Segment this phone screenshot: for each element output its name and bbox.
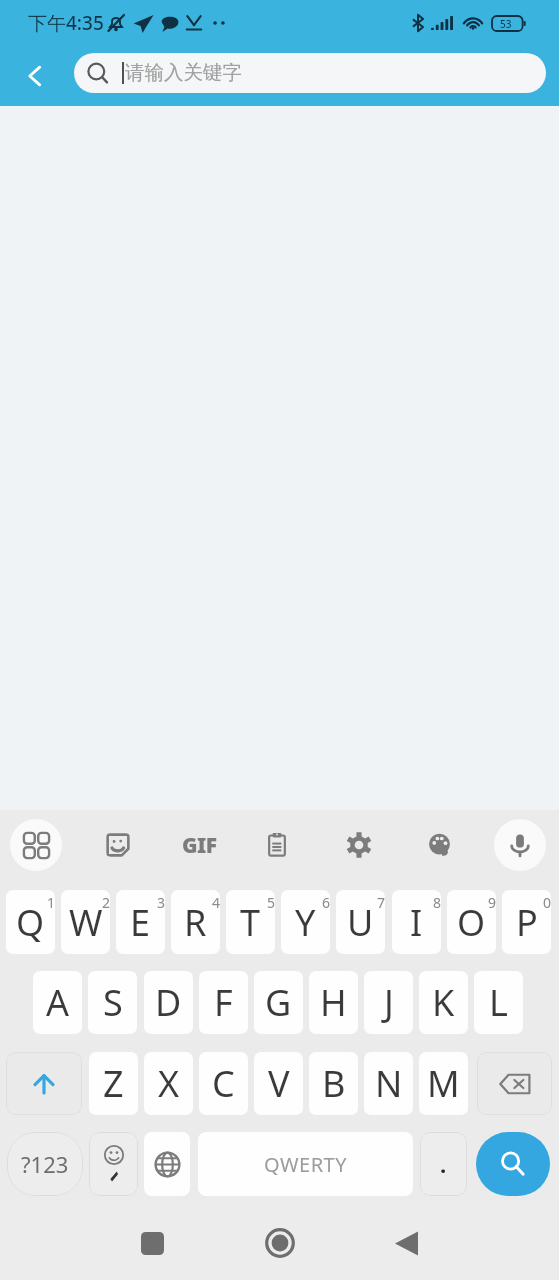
staticText: W — [69, 898, 103, 947]
button[interactable]: Theme — [414, 819, 466, 871]
staticText: 8 — [433, 893, 441, 912]
staticText: D — [155, 978, 182, 1027]
button[interactable]: QWERTY — [198, 1132, 413, 1196]
button[interactable]: B — [309, 1052, 358, 1115]
button[interactable]: K — [419, 971, 468, 1034]
staticText: 6 — [322, 893, 330, 912]
button[interactable]: Settings — [333, 819, 385, 871]
button[interactable]: J — [364, 971, 413, 1034]
button[interactable]: Stickers — [92, 819, 144, 871]
staticText: 2 — [102, 893, 110, 912]
button[interactable]: I — [392, 890, 441, 954]
staticText: ?123 — [21, 1149, 69, 1179]
button[interactable]: Emoji — [89, 1132, 138, 1196]
staticText: S — [103, 978, 123, 1027]
staticText: Z — [103, 1059, 124, 1108]
button[interactable]: GIF — [173, 819, 225, 871]
staticText: L — [489, 978, 508, 1027]
button[interactable]: Backspace — [477, 1052, 552, 1115]
staticText: 0 — [543, 893, 551, 912]
staticText: I — [410, 898, 423, 947]
button[interactable]: Back — [8, 50, 62, 102]
button[interactable]: Home — [251, 1214, 309, 1272]
button[interactable]: Y — [281, 890, 330, 954]
staticText: N — [375, 1059, 403, 1108]
button[interactable]: M — [419, 1052, 468, 1115]
staticText: M — [427, 1059, 460, 1108]
button[interactable]: Back — [377, 1214, 435, 1272]
staticText: F — [214, 978, 233, 1027]
button[interactable]: W — [61, 890, 110, 954]
button[interactable]: ?123 — [7, 1132, 83, 1196]
button[interactable]: E — [116, 890, 165, 954]
staticText: 53 — [500, 17, 512, 31]
staticText: 下午4:35 — [28, 10, 104, 36]
staticText: X — [158, 1059, 180, 1108]
button[interactable]: Shift — [6, 1052, 82, 1115]
button[interactable]: . — [420, 1132, 467, 1196]
staticText: B — [322, 1059, 346, 1108]
button[interactable]: P — [502, 890, 551, 954]
staticText: J — [384, 978, 394, 1027]
button[interactable]: X — [144, 1052, 193, 1115]
button[interactable]: V — [254, 1052, 303, 1115]
button[interactable]: Z — [89, 1052, 138, 1115]
button[interactable]: H — [309, 971, 358, 1034]
staticText: GIF — [182, 831, 217, 860]
button[interactable]: L — [474, 971, 523, 1034]
staticText: U — [347, 898, 374, 947]
staticText: . — [440, 1149, 447, 1179]
staticText: QWERTY — [264, 1151, 348, 1178]
staticText: A — [46, 978, 70, 1027]
button[interactable]: S — [88, 971, 137, 1034]
staticText: G — [265, 978, 292, 1027]
staticText: 5 — [267, 893, 275, 912]
staticText: 3 — [157, 893, 165, 912]
button[interactable]: Recents — [123, 1214, 181, 1272]
button[interactable]: A — [33, 971, 82, 1034]
button[interactable]: R — [171, 890, 220, 954]
staticText: T — [240, 898, 261, 947]
staticText: 7 — [377, 893, 385, 912]
staticText: R — [184, 898, 207, 947]
button[interactable]: Change language — [144, 1132, 190, 1196]
staticText: P — [516, 898, 538, 947]
staticText: 请输入关键字 — [125, 60, 242, 85]
staticText: Q — [16, 898, 45, 947]
staticText: E — [130, 898, 151, 947]
button[interactable]: U — [336, 890, 385, 954]
button[interactable]: F — [199, 971, 248, 1034]
staticText: 1 — [47, 893, 55, 912]
button[interactable]: C — [199, 1052, 248, 1115]
staticText: Y — [295, 898, 316, 947]
staticText: K — [432, 978, 455, 1027]
staticText: H — [320, 978, 347, 1027]
button[interactable]: Clipboard — [251, 819, 303, 871]
button[interactable]: N — [364, 1052, 413, 1115]
button[interactable]: T — [226, 890, 275, 954]
staticText: 9 — [488, 893, 496, 912]
staticText: C — [212, 1059, 235, 1108]
button[interactable]: O — [447, 890, 496, 954]
button[interactable]: D — [144, 971, 193, 1034]
button[interactable]: Q — [6, 890, 55, 954]
button[interactable]: 请输入关键字 — [74, 53, 546, 93]
button[interactable]: G — [254, 971, 303, 1034]
button[interactable]: Voice input — [494, 819, 546, 871]
button[interactable]: Search — [476, 1132, 550, 1196]
button[interactable]: Keyboard modes — [10, 819, 62, 871]
staticText: O — [457, 898, 486, 947]
staticText: V — [268, 1059, 290, 1108]
staticText: 4 — [212, 893, 220, 912]
